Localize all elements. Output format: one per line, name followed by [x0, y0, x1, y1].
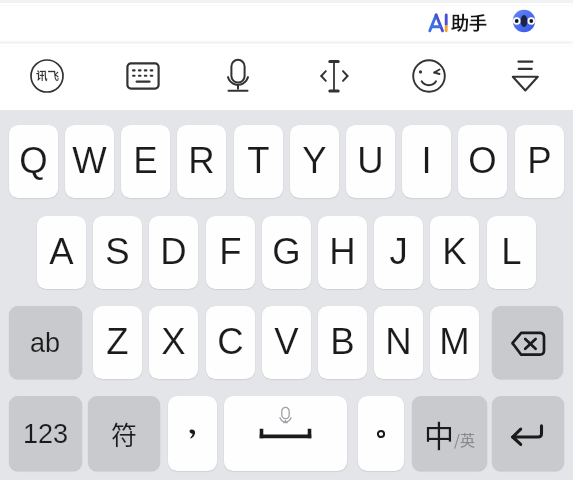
- button[interactable]: 中: [412, 396, 487, 471]
- button[interactable]: F: [206, 216, 255, 289]
- staticText: L: [501, 231, 522, 272]
- staticText: M: [439, 321, 470, 362]
- button[interactable]: 123: [9, 396, 82, 471]
- button[interactable]: Hide keyboard: [503, 54, 547, 98]
- staticText: 中: [424, 412, 454, 455]
- button[interactable]: [358, 396, 404, 471]
- button[interactable]: C: [206, 306, 255, 379]
- button[interactable]: M: [430, 306, 479, 379]
- button[interactable]: [168, 396, 217, 471]
- staticText: O: [468, 140, 497, 181]
- button[interactable]: J: [374, 216, 423, 289]
- staticText: A: [49, 231, 74, 272]
- button[interactable]: K: [430, 216, 479, 289]
- button[interactable]: I: [402, 125, 451, 198]
- staticText: U: [357, 140, 384, 181]
- staticText: ab: [30, 328, 61, 358]
- button[interactable]: X: [149, 306, 198, 379]
- button[interactable]: Y: [290, 125, 339, 198]
- staticText: C: [217, 321, 244, 362]
- staticText: P: [527, 140, 552, 181]
- button[interactable]: T: [234, 125, 283, 198]
- button[interactable]: W: [65, 125, 114, 198]
- button[interactable]: 助手: [429, 6, 487, 38]
- staticText: Z: [106, 321, 129, 362]
- button[interactable]: AI assistant avatar: [511, 8, 537, 34]
- button[interactable]: ab: [9, 306, 82, 379]
- staticText: K: [442, 231, 467, 272]
- button[interactable]: V: [262, 306, 311, 379]
- button[interactable]: Q: [9, 125, 58, 198]
- staticText: Q: [19, 140, 48, 181]
- button[interactable]: [492, 306, 563, 379]
- button[interactable]: Z: [93, 306, 142, 379]
- button[interactable]: E: [121, 125, 170, 198]
- button[interactable]: [224, 396, 347, 471]
- staticText: W: [72, 140, 107, 181]
- staticText: T: [247, 140, 270, 181]
- staticText: B: [330, 321, 355, 362]
- staticText: D: [160, 231, 187, 272]
- staticText: G: [272, 231, 301, 272]
- button[interactable]: Emoji: [407, 54, 451, 98]
- button[interactable]: N: [374, 306, 423, 379]
- staticText: 助手: [451, 9, 487, 35]
- staticText: 123: [23, 419, 69, 449]
- button[interactable]: U: [346, 125, 395, 198]
- button[interactable]: D: [149, 216, 198, 289]
- button[interactable]: Move cursor: [312, 54, 356, 98]
- staticText: /英: [454, 429, 475, 451]
- button[interactable]: G: [262, 216, 311, 289]
- button[interactable]: R: [177, 125, 226, 198]
- button[interactable]: O: [458, 125, 507, 198]
- staticText: F: [219, 231, 242, 272]
- button[interactable]: B: [318, 306, 367, 379]
- button[interactable]: 符: [88, 396, 160, 471]
- staticText: R: [188, 140, 215, 181]
- staticText: 讯飞: [36, 67, 59, 84]
- button[interactable]: [492, 396, 564, 471]
- button[interactable]: H: [318, 216, 367, 289]
- button[interactable]: P: [515, 125, 564, 198]
- button[interactable]: Input method: [25, 54, 69, 98]
- staticText: S: [105, 231, 130, 272]
- staticText: I: [421, 140, 432, 181]
- button[interactable]: L: [487, 216, 536, 289]
- staticText: 符: [111, 415, 138, 453]
- button[interactable]: Voice input: [216, 54, 260, 98]
- staticText: V: [274, 321, 299, 362]
- staticText: H: [329, 231, 356, 272]
- staticText: J: [389, 231, 408, 272]
- staticText: X: [161, 321, 186, 362]
- staticText: N: [385, 321, 412, 362]
- staticText: Y: [302, 140, 327, 181]
- staticText: E: [133, 140, 158, 181]
- button[interactable]: Keyboard layout: [121, 54, 165, 98]
- button[interactable]: S: [93, 216, 142, 289]
- button[interactable]: A: [37, 216, 86, 289]
